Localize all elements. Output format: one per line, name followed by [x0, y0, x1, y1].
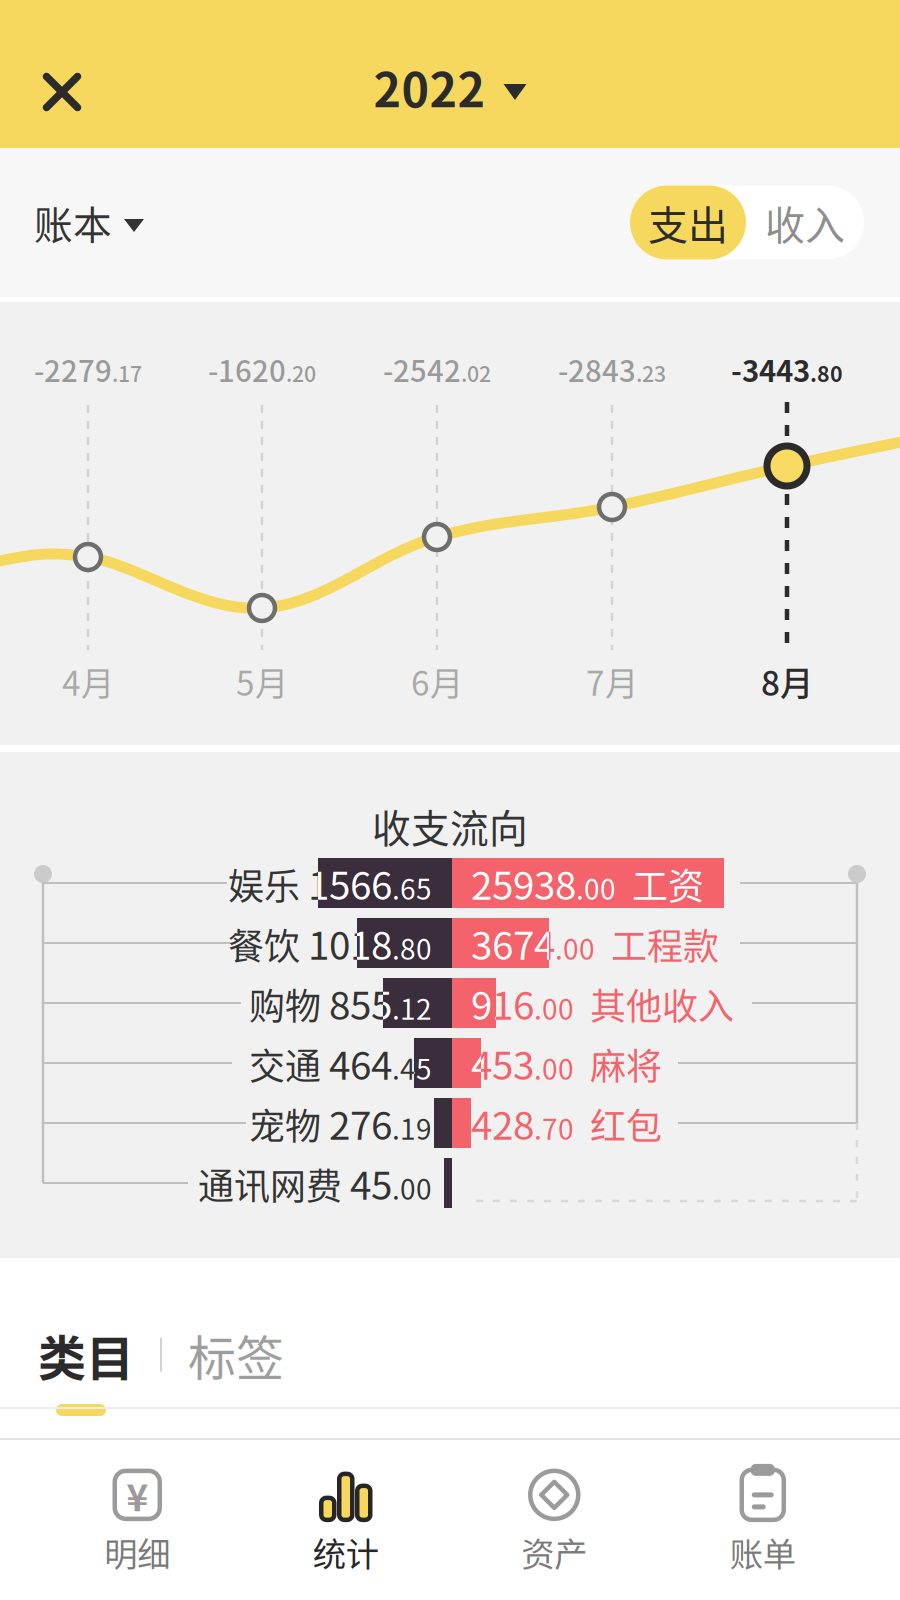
staticText: -1620 [208, 348, 286, 390]
staticText: .00 [392, 1167, 432, 1208]
button[interactable]: 统计 [241, 1434, 450, 1600]
staticText: 855 [329, 975, 392, 1031]
staticText: .65 [392, 867, 432, 908]
staticText: 8月 [761, 657, 813, 705]
button[interactable]: 标签 [162, 1308, 284, 1401]
button[interactable]: 账本 [0, 172, 160, 272]
staticText: 3674 [471, 915, 555, 971]
staticText: 交通 [249, 1038, 321, 1090]
staticText: .80 [392, 927, 432, 968]
staticText: 276 [329, 1095, 392, 1151]
staticText: 娱乐 [228, 858, 300, 910]
staticText: 工程款 [611, 918, 719, 970]
staticText: 4月 [62, 657, 114, 705]
button[interactable]: Close [0, 0, 101, 148]
button[interactable]: 收入 [746, 185, 864, 259]
staticText: 464 [329, 1035, 392, 1091]
staticText: 1566 [308, 855, 392, 911]
button[interactable]: 支出 [630, 185, 746, 259]
staticText: .80 [810, 357, 843, 388]
staticText: 453 [471, 1035, 534, 1091]
staticText: 标签 [188, 1320, 284, 1389]
staticText: 通讯网费 [198, 1158, 342, 1210]
staticText: 453 [471, 1035, 534, 1091]
staticText: 428 [471, 1095, 534, 1151]
staticText: .00 [534, 1047, 574, 1088]
staticText: 5月 [236, 657, 288, 705]
staticText: 账单 [730, 1528, 796, 1576]
staticText [616, 857, 632, 911]
staticText: 916 [471, 975, 534, 1031]
staticText: .20 [286, 357, 316, 388]
staticText: .80 [392, 927, 432, 968]
staticText: 45 [350, 1155, 392, 1211]
staticText: 收支流向 [372, 798, 528, 854]
staticText: 红包 [590, 1098, 662, 1150]
staticText: 1566 [308, 855, 392, 911]
button[interactable]: 类目 [0, 1308, 160, 1401]
staticText: 类目 [38, 1320, 134, 1389]
staticText: 购物 [249, 978, 321, 1030]
button[interactable]: 资产 [450, 1434, 658, 1600]
staticText: -2542 [383, 348, 461, 390]
staticText: 统计 [313, 1528, 379, 1576]
staticText: .00 [392, 1167, 432, 1208]
staticText: 明细 [104, 1528, 170, 1576]
staticText: 25938 [471, 855, 576, 911]
staticText: 支出 [648, 193, 728, 251]
staticText: .00 [534, 987, 574, 1028]
staticText: 资产 [521, 1528, 587, 1576]
staticText: .70 [534, 1107, 574, 1148]
staticText: .00 [576, 867, 616, 908]
staticText: 账本 [34, 194, 112, 250]
staticText: ¥ [126, 1468, 148, 1522]
staticText: 通讯网费 [198, 1158, 342, 1210]
staticText: 1018 [308, 915, 392, 971]
staticText: .19 [392, 1107, 432, 1148]
staticText: .23 [636, 357, 666, 388]
staticText: 其他收入 [590, 978, 734, 1030]
staticText: 855 [329, 975, 392, 1031]
staticText: .00 [555, 927, 595, 968]
staticText: -2279 [34, 348, 112, 390]
button[interactable]: ¥ [33, 1434, 241, 1600]
staticText: 工资 [632, 858, 704, 910]
staticText: 428 [471, 1095, 534, 1151]
staticText: 工程款 [611, 918, 719, 970]
staticText: 6月 [411, 657, 463, 705]
staticText: 娱乐 [228, 858, 300, 910]
staticText: 25938 [471, 855, 576, 911]
staticText: .00 [534, 987, 574, 1028]
staticText: -3443 [731, 348, 810, 390]
staticText: .02 [461, 357, 491, 388]
staticText: .17 [112, 357, 142, 388]
staticText: 餐饮 [228, 918, 300, 970]
staticText: 宠物 [249, 1098, 321, 1150]
staticText: -2843 [558, 348, 636, 390]
staticText: 7月 [586, 657, 638, 705]
button[interactable]: 2022 [361, 27, 538, 121]
staticText: 45 [350, 1155, 392, 1211]
staticText: .45 [392, 1047, 432, 1088]
staticText: 3674 [471, 915, 555, 971]
staticText: 916 [471, 975, 534, 1031]
staticText: .70 [534, 1107, 574, 1148]
button[interactable]: 账单 [658, 1434, 867, 1600]
staticText: 其他收入 [590, 978, 734, 1030]
staticText: 1018 [308, 915, 392, 971]
staticText: .00 [555, 927, 595, 968]
